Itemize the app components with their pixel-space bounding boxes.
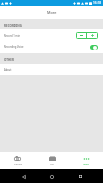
button[interactable]: More (69, 152, 103, 169)
staticText: More (47, 10, 57, 15)
staticText: Recording Voice (4, 45, 24, 49)
staticText: 16:18 (93, 1, 102, 5)
staticText: Camera (14, 163, 22, 166)
button[interactable]: Increase (87, 32, 98, 39)
button[interactable]: About (0, 64, 103, 75)
button[interactable]: Camera (0, 152, 35, 169)
button[interactable]: Back (18, 171, 29, 182)
button[interactable]: Home (46, 171, 57, 182)
button[interactable]: Decrease (76, 32, 86, 39)
button[interactable]: Recording Voice (0, 41, 103, 53)
button[interactable]: Recording Voice (90, 45, 98, 50)
staticText: OTHER (4, 58, 14, 62)
button[interactable]: Record 1 min (0, 29, 103, 41)
button[interactable]: Recent apps (75, 171, 86, 182)
staticText: More (83, 163, 89, 166)
staticText: Record 1 min (4, 34, 21, 38)
button[interactable]: File (35, 152, 69, 169)
staticText: File (50, 163, 54, 166)
staticText: About (4, 68, 12, 72)
staticText: RECORDING (4, 24, 22, 28)
